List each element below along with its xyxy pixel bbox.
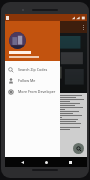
button[interactable]: Home [39, 157, 53, 167]
button[interactable]: Back [15, 157, 29, 167]
staticText: More From Developer [18, 89, 56, 94]
button[interactable]: More options [79, 21, 87, 33]
button[interactable]: More From Developer [5, 86, 60, 97]
button[interactable]: Recent apps [63, 157, 77, 167]
staticText: Follow Me [18, 78, 36, 83]
button[interactable]: Search [73, 143, 84, 154]
button[interactable]: Follow Me [5, 75, 60, 86]
button[interactable] [60, 21, 87, 157]
staticText: Search Zip Codes [18, 67, 48, 72]
button[interactable]: Search Zip Codes [5, 64, 60, 75]
button[interactable] [5, 21, 60, 61]
